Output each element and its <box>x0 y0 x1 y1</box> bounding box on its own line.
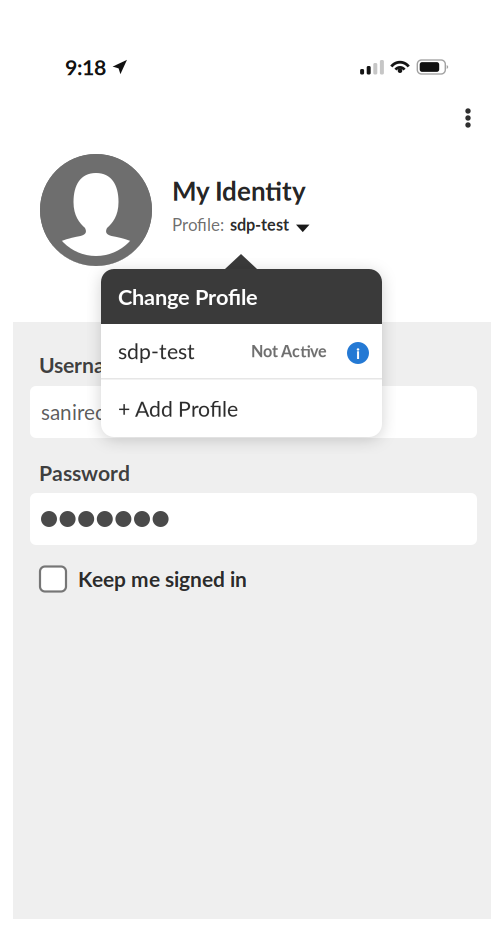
button[interactable]: + Add Profile <box>101 379 382 437</box>
staticText: Username <box>39 352 134 377</box>
staticText: sdp-test <box>118 338 195 364</box>
staticText: + Add Profile <box>118 396 238 421</box>
staticText: Profile: <box>172 214 224 234</box>
button[interactable]: sdp-test <box>101 324 382 378</box>
staticText: sdp-test <box>230 215 289 234</box>
staticText: 9:18 <box>65 54 106 80</box>
staticText: Change Profile <box>118 283 258 310</box>
staticText: i <box>356 343 360 363</box>
button[interactable]: More options <box>449 99 487 137</box>
button[interactable]: Profile: <box>172 214 309 234</box>
button[interactable]: Keep me signed in <box>40 562 487 596</box>
staticText: sanirechan <box>41 400 139 424</box>
staticText: Keep me signed in <box>78 566 247 591</box>
staticText: My Identity <box>172 175 306 206</box>
staticText: Not Active <box>251 341 327 361</box>
staticText: Password <box>39 460 130 485</box>
